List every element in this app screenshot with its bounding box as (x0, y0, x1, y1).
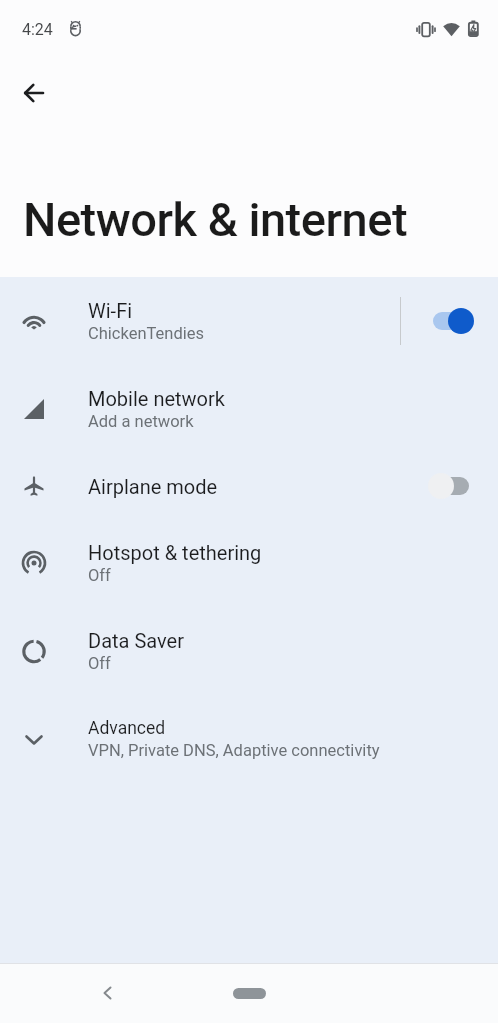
staticText: Advanced (88, 718, 166, 739)
staticText: Wi-Fi (88, 299, 133, 322)
staticText: Hotspot & tethering (88, 541, 262, 564)
staticText: VPN, Private DNS, Adaptive connectivity (88, 741, 380, 760)
staticText: Off (88, 654, 111, 673)
staticText: Mobile network (88, 387, 225, 410)
staticText: 4:24 (22, 20, 53, 39)
staticText: Data Saver (88, 629, 184, 652)
staticText: Off (88, 566, 111, 585)
staticText: Network & internet (23, 192, 408, 247)
staticText: Add a network (88, 412, 194, 431)
staticText: ChickenTendies (88, 324, 205, 343)
staticText: Airplane mode (88, 475, 218, 498)
